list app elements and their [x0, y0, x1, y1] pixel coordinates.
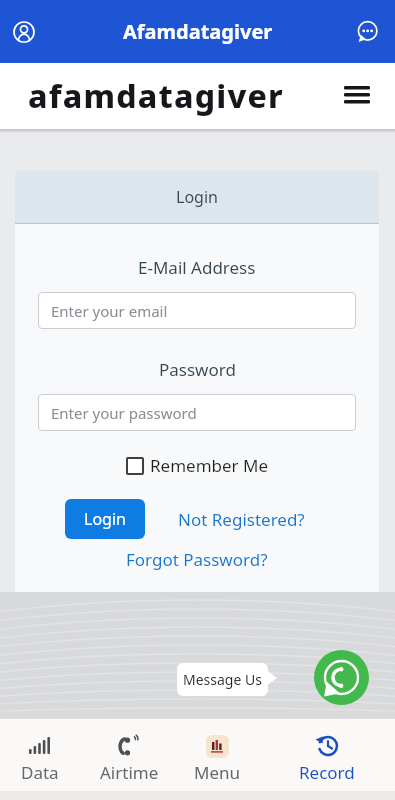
staticText: Enter your password [51, 403, 197, 423]
button[interactable]: Enter your password [38, 394, 356, 431]
staticText: Afamdatagiver [123, 18, 273, 45]
staticText: Menu [194, 761, 241, 784]
staticText: E-Mail Address [138, 256, 256, 279]
button[interactable]: Enter your email [38, 292, 356, 329]
staticText: afamdatagiver [28, 74, 284, 118]
button[interactable] [314, 650, 369, 705]
staticText: Remember Me [150, 454, 269, 477]
staticText: Enter your email [51, 301, 168, 321]
staticText: Record [299, 761, 355, 784]
staticText: Data [21, 761, 59, 784]
button[interactable] [356, 21, 378, 43]
staticText: Message Us [183, 670, 262, 689]
button[interactable]: Record [282, 733, 372, 784]
button[interactable]: Forgot Password? [126, 548, 268, 571]
button[interactable]: Airtime [84, 733, 174, 784]
staticText: Login [176, 186, 218, 208]
button[interactable]: Data [0, 733, 85, 784]
button[interactable]: Not Registered? [178, 508, 305, 531]
button[interactable] [13, 21, 35, 43]
button[interactable]: Menu [172, 733, 262, 784]
button[interactable]: Message Us [177, 663, 268, 696]
staticText: Login [84, 508, 126, 530]
button[interactable] [344, 83, 370, 109]
staticText: Airtime [100, 761, 159, 784]
button[interactable]: Remember Me [126, 454, 269, 477]
button[interactable]: Login [65, 499, 145, 539]
staticText: Password [159, 358, 236, 381]
